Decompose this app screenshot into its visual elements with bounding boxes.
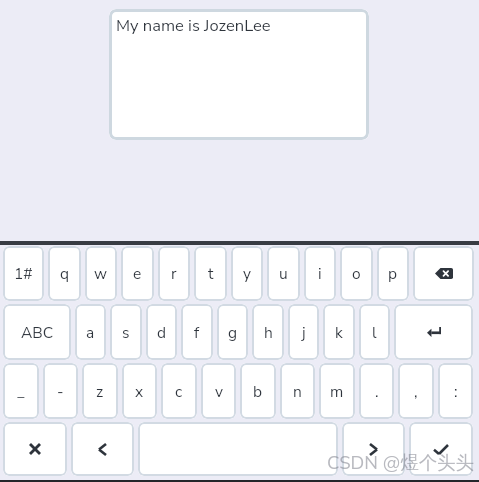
button[interactable]: Move cursor left [71, 422, 134, 476]
staticText: z [96, 381, 104, 402]
button[interactable]: r [158, 246, 190, 301]
button[interactable]: o [340, 246, 373, 301]
staticText: f [194, 322, 200, 343]
button[interactable]: Space [138, 422, 338, 476]
button[interactable]: a [75, 304, 106, 360]
staticText: CSDN @煜个头头 [327, 450, 475, 475]
button[interactable]: Enter [394, 304, 473, 360]
button[interactable]: - [43, 363, 78, 419]
staticText: o [352, 263, 361, 284]
staticText: x [135, 381, 144, 402]
staticText: k [335, 322, 343, 343]
button[interactable]: My name is JozenLee [109, 9, 369, 140]
button[interactable]: b [240, 363, 276, 419]
button[interactable]: k [323, 304, 355, 360]
staticText: r [171, 263, 177, 284]
staticText: e [133, 263, 142, 284]
staticText: t [208, 263, 214, 284]
staticText: My name is JozenLee [116, 14, 271, 37]
staticText: h [264, 322, 273, 343]
button[interactable]: q [48, 246, 81, 301]
staticText: : [454, 381, 458, 402]
button[interactable]: w [85, 246, 117, 301]
staticText: n [293, 381, 302, 402]
staticText: 1# [14, 263, 33, 284]
staticText: g [228, 322, 238, 343]
button[interactable]: e [121, 246, 154, 301]
staticText: w [94, 263, 108, 284]
staticText: s [122, 322, 130, 343]
staticText: ABC [21, 322, 54, 343]
staticText: l [372, 322, 377, 343]
staticText: y [243, 263, 251, 284]
staticText: . [375, 381, 379, 402]
button[interactable]: i [304, 246, 336, 301]
button[interactable]: z [82, 363, 118, 419]
button[interactable]: s [110, 304, 142, 360]
staticText: b [253, 381, 263, 402]
button[interactable]: h [252, 304, 284, 360]
button[interactable]: m [319, 363, 355, 419]
button[interactable]: p [377, 246, 409, 301]
button[interactable]: u [267, 246, 300, 301]
staticText: q [60, 263, 70, 284]
staticText: , [414, 381, 418, 402]
staticText: d [157, 322, 167, 343]
button[interactable]: x [122, 363, 157, 419]
staticText: m [330, 381, 344, 402]
button[interactable]: Confirm [409, 422, 473, 476]
button[interactable]: : [438, 363, 473, 419]
button[interactable]: v [201, 363, 236, 419]
button[interactable]: Backspace [413, 246, 474, 301]
button[interactable]: Move cursor right [342, 422, 405, 476]
button[interactable]: _ [3, 363, 39, 419]
button[interactable]: y [231, 246, 263, 301]
button[interactable]: g [217, 304, 248, 360]
button[interactable]: f [181, 304, 213, 360]
staticText: - [57, 381, 64, 402]
button[interactable]: j [288, 304, 319, 360]
staticText: i [318, 263, 322, 284]
staticText: u [279, 263, 288, 284]
staticText: v [215, 381, 223, 402]
staticText: p [388, 263, 398, 284]
button[interactable]: , [398, 363, 434, 419]
button[interactable]: l [359, 304, 390, 360]
staticText: c [175, 381, 183, 402]
staticText: j [302, 322, 306, 343]
button[interactable]: . [359, 363, 394, 419]
button[interactable]: n [280, 363, 315, 419]
button[interactable]: Close keyboard [3, 422, 67, 476]
button[interactable]: c [161, 363, 197, 419]
staticText: a [86, 322, 95, 343]
button[interactable]: t [194, 246, 227, 301]
button[interactable]: 1# [3, 246, 44, 301]
staticText: _ [17, 381, 25, 402]
button[interactable]: d [146, 304, 177, 360]
button[interactable]: ABC [3, 304, 71, 360]
